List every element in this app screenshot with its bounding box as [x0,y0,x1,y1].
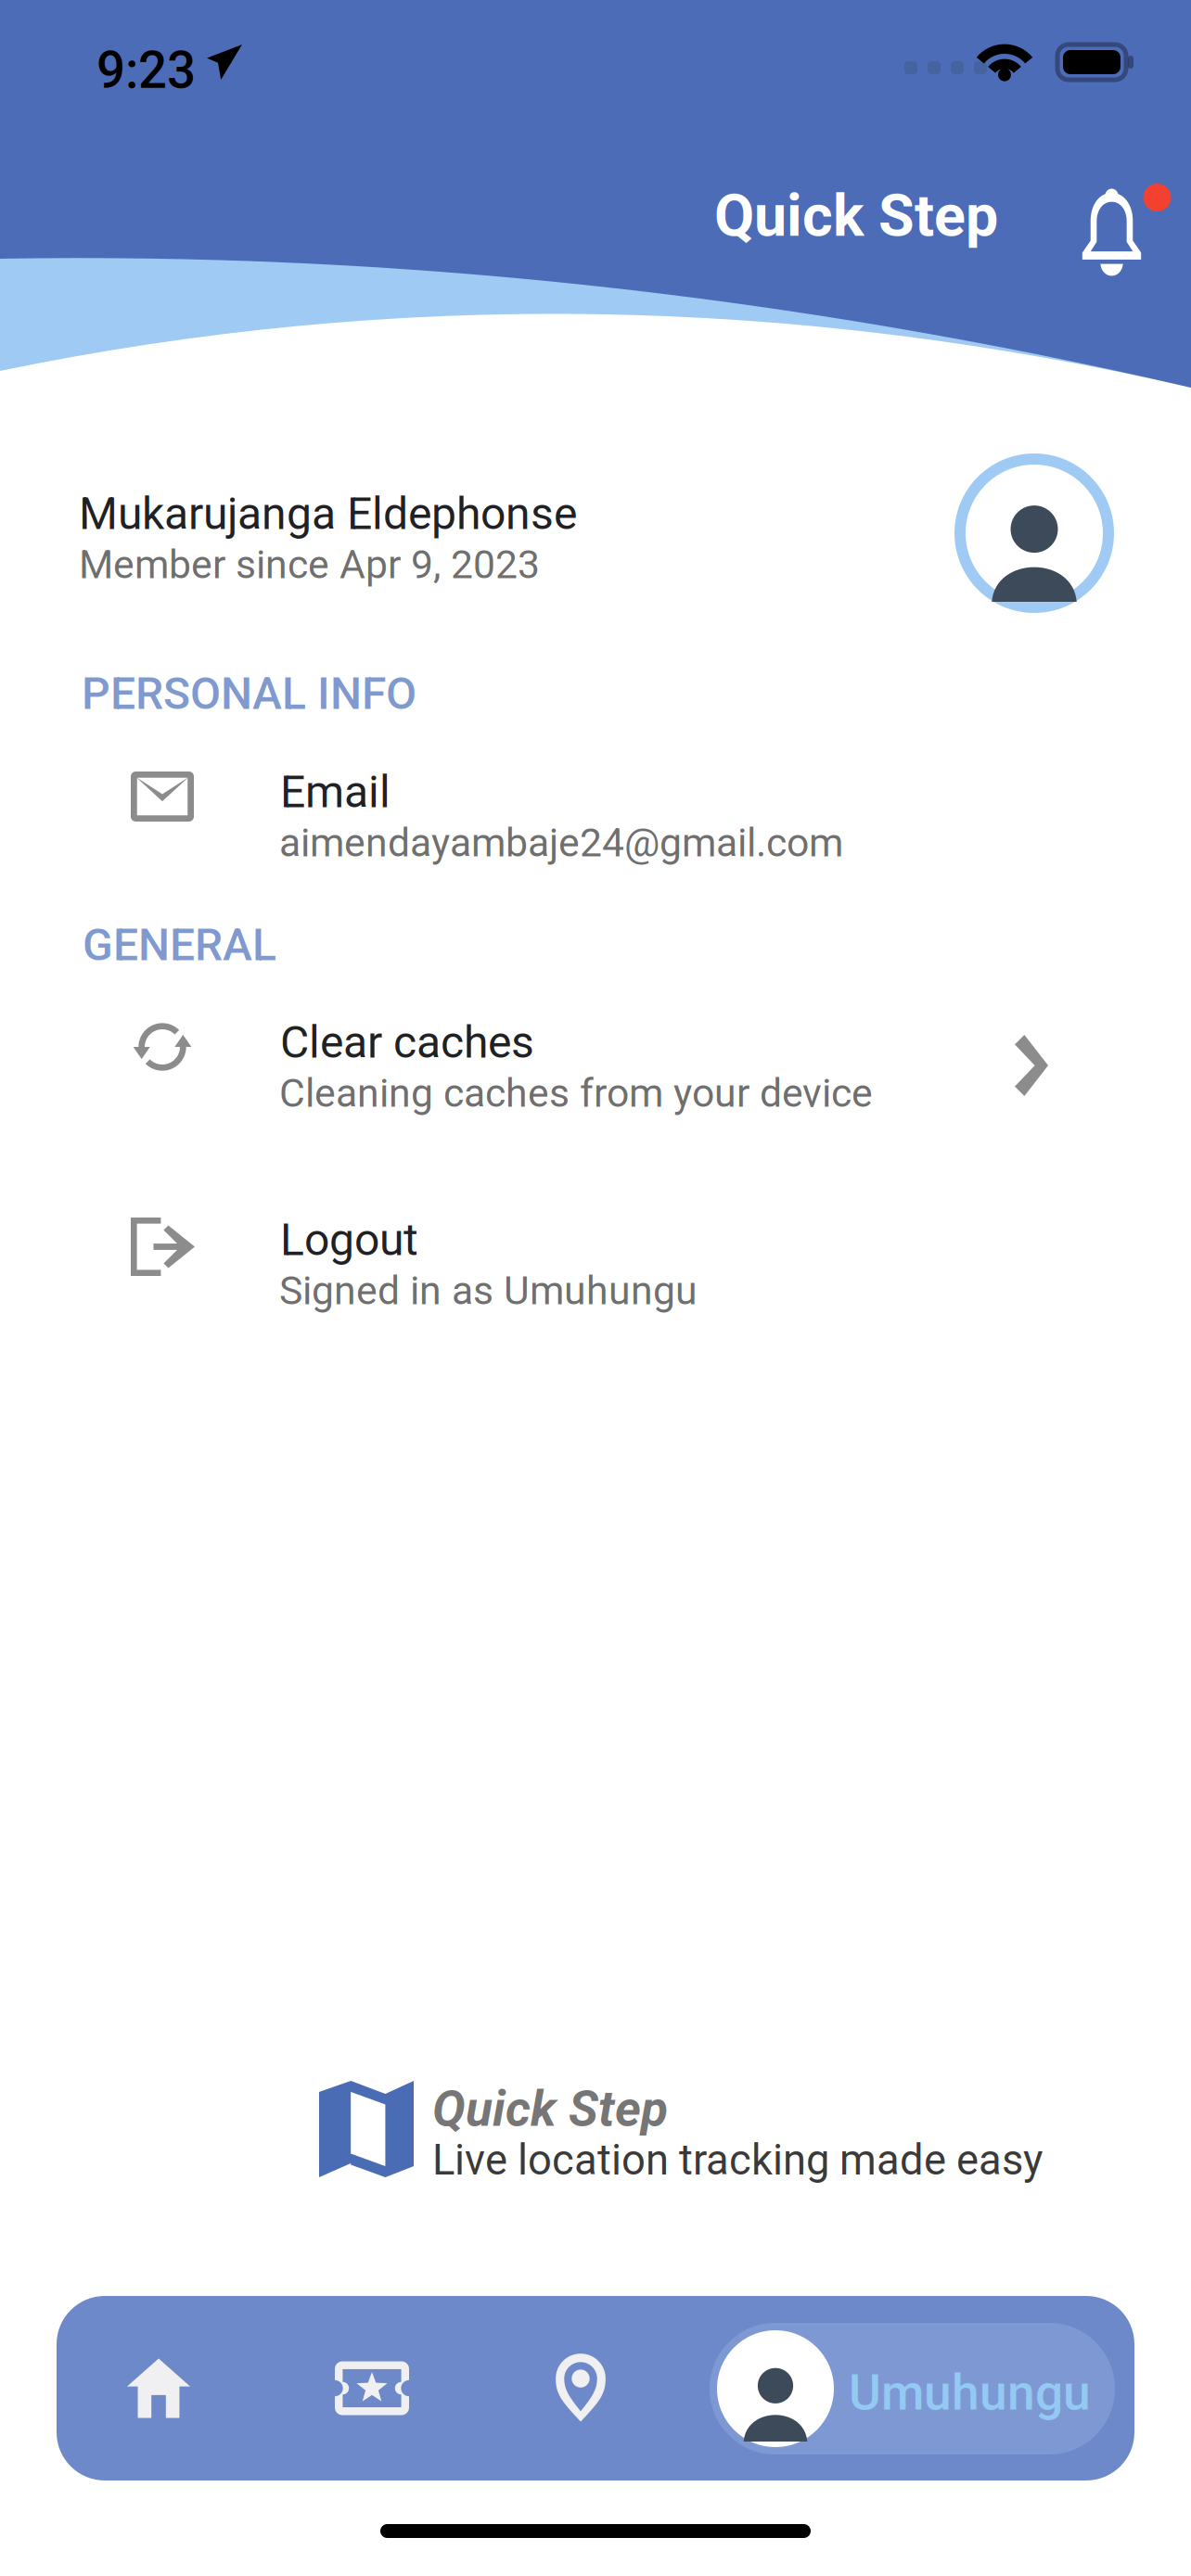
button[interactable]: Clear caches [0,992,1191,1131]
staticText: Email [280,766,391,818]
staticText: Logout [280,1214,418,1266]
staticText: Mukarujanga Eldephonse [79,488,577,540]
staticText: Quick Step [714,182,998,250]
button[interactable]: Umuhungu [710,2323,1115,2455]
button[interactable]: Logout [0,1190,1191,1329]
staticText: Cleaning caches from your device [279,1070,873,1116]
staticText: 9:23 [96,41,196,100]
staticText: Signed in as Umuhungu [279,1268,698,1314]
staticText: PERSONAL INFO [82,668,416,720]
staticText: Umuhungu [849,2364,1091,2422]
staticText: Member since Apr 9, 2023 [79,542,540,588]
button[interactable]: Profile photo [954,453,1114,613]
staticText: GENERAL [83,919,276,971]
button[interactable]: Map [497,2296,664,2480]
staticText: Clear caches [280,1016,534,1068]
button[interactable]: Notifications [1066,178,1158,275]
staticText: aimendayambaje24@gmail.com [279,820,843,866]
staticText: Quick Step [432,2080,668,2138]
button[interactable]: Home [75,2296,242,2480]
button[interactable]: Email [0,742,1191,881]
button[interactable]: Tickets [288,2296,455,2480]
staticText: Live location tracking made easy [432,2136,1043,2185]
